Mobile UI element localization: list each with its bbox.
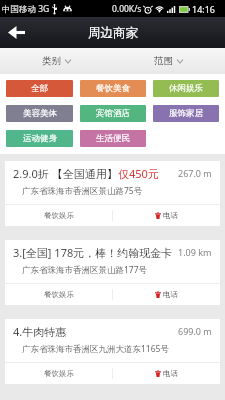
- button[interactable]: 运动健身: [6, 130, 73, 147]
- staticText: 中国移动 3G: [2, 3, 50, 15]
- button[interactable]: 3.[全国] 178元，棒！约翰现金卡: [5, 240, 220, 305]
- button[interactable]: 餐饮娱乐: [5, 284, 112, 305]
- staticText: 3.[全国] 178元，棒！约翰现金卡: [13, 245, 173, 260]
- staticText: 电话: [163, 211, 178, 220]
- staticText: 服饰家居: [169, 108, 203, 119]
- button[interactable]: 服饰家居: [153, 105, 219, 122]
- staticText: 休闲娱乐: [169, 83, 203, 94]
- staticText: 广东省珠海市香洲区九洲大道东1165号: [22, 343, 169, 355]
- staticText: 广东省珠海市香洲区景山路177号: [22, 264, 148, 276]
- button[interactable]: 范围: [112, 48, 225, 74]
- staticText: 运动健身: [23, 133, 57, 144]
- staticText: 周边商家: [88, 25, 138, 41]
- staticText: 餐饮娱乐: [44, 211, 74, 220]
- staticText: 类别: [42, 55, 61, 67]
- staticText: 699.0 m: [178, 325, 212, 337]
- button[interactable]: 美容美体: [6, 105, 73, 122]
- button[interactable]: 2.9.0折 【全国通用】: [5, 161, 220, 226]
- button[interactable]: 电话: [113, 205, 220, 226]
- staticText: 美容美体: [23, 108, 57, 119]
- staticText: 2.9.0折 【全国通用】: [13, 166, 118, 181]
- button[interactable]: Back: [0, 17, 33, 48]
- staticText: 餐饮娱乐: [44, 369, 74, 378]
- staticText: 范围: [154, 55, 173, 67]
- staticText: 14:16: [192, 3, 216, 15]
- button[interactable]: 电话: [113, 284, 220, 305]
- button[interactable]: 餐饮娱乐: [5, 205, 112, 226]
- staticText: 广东省珠海市香洲区景山路75号: [22, 185, 143, 197]
- staticText: 电话: [163, 369, 178, 378]
- button[interactable]: 餐饮美食: [80, 80, 146, 97]
- button[interactable]: 休闲娱乐: [153, 80, 219, 97]
- button[interactable]: 4.牛肉特惠: [5, 319, 220, 384]
- button[interactable]: 类别: [0, 48, 112, 74]
- button[interactable]: 宾馆酒店: [80, 105, 146, 122]
- button[interactable]: 电话: [113, 363, 220, 384]
- staticText: 0.00K/s: [112, 3, 142, 15]
- button[interactable]: 生活便民: [80, 130, 146, 147]
- staticText: 4.牛肉特惠: [13, 324, 67, 339]
- staticText: 全部: [31, 83, 48, 94]
- staticText: 宾馆酒店: [96, 108, 130, 119]
- staticText: 餐饮娱乐: [44, 290, 74, 299]
- staticText: 生活便民: [96, 133, 130, 144]
- staticText: 267.0 m: [178, 167, 212, 179]
- button[interactable]: 餐饮娱乐: [5, 363, 112, 384]
- staticText: 仅450元: [118, 166, 159, 181]
- staticText: 1.09 km: [178, 246, 212, 258]
- button[interactable]: 全部: [6, 80, 73, 97]
- staticText: 电话: [163, 290, 178, 299]
- staticText: 餐饮美食: [96, 83, 130, 94]
